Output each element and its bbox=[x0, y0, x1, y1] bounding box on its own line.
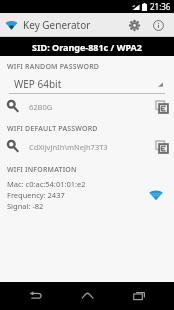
staticText: WIFI DEFAULT PASSWORD bbox=[7, 124, 98, 134]
staticText: CdXijvJnIh\mNejh73T3 bbox=[29, 142, 108, 152]
staticText: 62B0G bbox=[29, 102, 53, 112]
button[interactable]: Wifi signal bbox=[146, 185, 166, 205]
button[interactable]: CdXijvJnIh\mNejh73T3 bbox=[0, 136, 174, 157]
button[interactable]: Back bbox=[18, 283, 52, 309]
button[interactable]: Settings bbox=[123, 14, 145, 36]
staticText: WIFI RANDOM PASSWORD bbox=[7, 62, 100, 72]
button[interactable]: Info bbox=[147, 14, 169, 36]
button[interactable]: Home bbox=[70, 283, 104, 309]
button[interactable]: Copy bbox=[151, 136, 172, 157]
staticText: WEP 64bit bbox=[14, 77, 62, 91]
button[interactable]: Recents bbox=[122, 283, 156, 309]
staticText: SID: Orange-881c / WPA2 bbox=[32, 41, 142, 53]
staticText: WIFI INFORMATION bbox=[7, 165, 77, 175]
staticText: Key Generator bbox=[23, 18, 91, 32]
staticText: Mac: c0:ac:54:01:01:e2 bbox=[7, 179, 86, 189]
button[interactable]: Copy bbox=[151, 96, 172, 117]
staticText: Frequency: 2437 bbox=[7, 190, 65, 200]
staticText: Signal: -82 bbox=[7, 201, 44, 211]
button[interactable]: WEP 64bit bbox=[9, 75, 165, 94]
button[interactable]: 62B0G bbox=[0, 96, 174, 117]
staticText: 21:36 bbox=[150, 1, 171, 12]
